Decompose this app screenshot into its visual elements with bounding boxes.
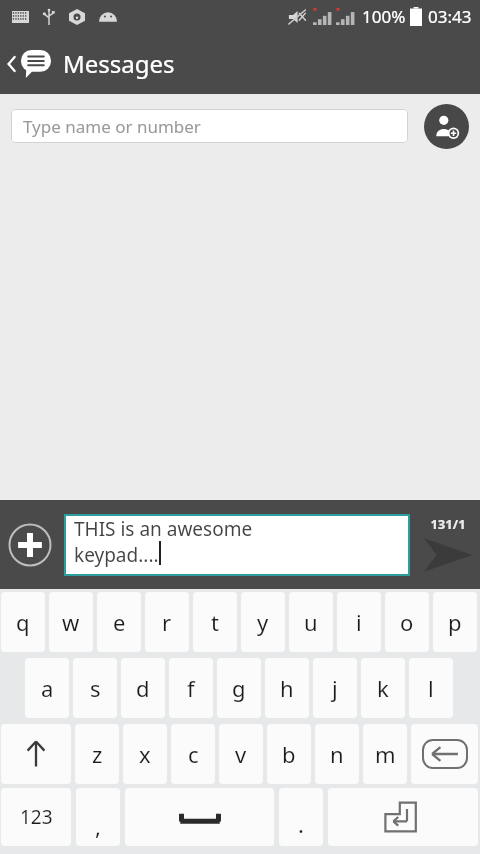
button[interactable]: h <box>265 658 309 718</box>
button[interactable]: t <box>193 592 237 652</box>
button[interactable]: Add contact <box>424 104 469 149</box>
button[interactable]: q <box>1 592 45 652</box>
button[interactable]: 123 <box>1 788 71 846</box>
button[interactable]: Send <box>416 515 480 574</box>
button[interactable]: k <box>361 658 405 718</box>
button[interactable]: y <box>241 592 285 652</box>
staticText: e <box>113 607 126 637</box>
staticText: 03:43 <box>428 5 472 28</box>
button[interactable]: , <box>76 788 120 846</box>
staticText: Type name or number <box>23 115 201 138</box>
button[interactable]: Enter <box>328 788 478 846</box>
staticText: y <box>257 607 269 637</box>
button[interactable]: s <box>73 658 117 718</box>
staticText: u <box>304 607 318 637</box>
staticText: g <box>232 673 246 703</box>
button[interactable]: u <box>289 592 333 652</box>
button[interactable]: d <box>121 658 165 718</box>
button[interactable]: THIS is an awesome <box>64 514 410 576</box>
staticText: Messages <box>63 47 175 80</box>
staticText: h <box>280 673 294 703</box>
staticText: , <box>95 811 101 841</box>
button[interactable]: x <box>123 724 167 784</box>
button[interactable]: Type name or number <box>11 109 408 143</box>
staticText: k <box>377 673 389 703</box>
button[interactable]: z <box>75 724 119 784</box>
button[interactable]: c <box>171 724 215 784</box>
staticText: a <box>41 673 54 703</box>
button[interactable]: Shift <box>1 724 71 784</box>
button[interactable]: f <box>169 658 213 718</box>
button[interactable]: w <box>49 592 93 652</box>
staticText: q <box>16 607 30 637</box>
staticText: o <box>400 607 414 637</box>
button[interactable]: Backspace <box>411 724 478 784</box>
staticText: 131/1 <box>430 515 466 533</box>
button[interactable]: r <box>145 592 189 652</box>
button[interactable]: o <box>385 592 429 652</box>
button[interactable]: p <box>433 592 477 652</box>
staticText: m <box>375 739 396 769</box>
staticText: b <box>282 739 296 769</box>
staticText: l <box>428 673 434 703</box>
staticText: j <box>332 673 338 703</box>
staticText: r <box>162 607 172 637</box>
staticText: f <box>187 673 195 703</box>
staticText: t <box>211 607 219 637</box>
staticText: v <box>235 739 247 769</box>
staticText: THIS is an awesome <box>74 516 253 542</box>
staticText: 100% <box>362 5 406 28</box>
button[interactable]: n <box>315 724 359 784</box>
staticText: s <box>90 673 101 703</box>
staticText: c <box>188 739 199 769</box>
button[interactable]: Space <box>125 788 274 846</box>
staticText: p <box>448 607 462 637</box>
button[interactable]: . <box>279 788 323 846</box>
staticText: . <box>298 809 304 839</box>
button[interactable]: b <box>267 724 311 784</box>
button[interactable]: Add attachment <box>7 522 53 568</box>
staticText: d <box>136 673 150 703</box>
button[interactable]: v <box>219 724 263 784</box>
staticText: x <box>139 739 151 769</box>
button[interactable]: e <box>97 592 141 652</box>
button[interactable]: j <box>313 658 357 718</box>
button[interactable]: Back to Messages <box>0 39 185 88</box>
staticText: 123 <box>20 804 53 830</box>
button[interactable]: a <box>25 658 69 718</box>
staticText: n <box>330 739 344 769</box>
button[interactable]: g <box>217 658 261 718</box>
staticText: i <box>356 607 362 637</box>
button[interactable]: l <box>409 658 453 718</box>
button[interactable]: i <box>337 592 381 652</box>
staticText: keypad.... <box>74 542 159 568</box>
button[interactable]: m <box>363 724 407 784</box>
staticText: w <box>62 607 80 637</box>
staticText: z <box>92 739 103 769</box>
